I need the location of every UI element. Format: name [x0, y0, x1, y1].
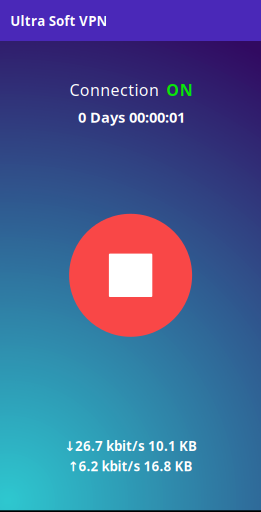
- staticText: Ultra Soft VPN: [10, 12, 107, 30]
- staticText: 0 Days 00:00:01: [78, 107, 185, 127]
- staticText: ↓26.7 kbit/s 10.1 KB: [64, 437, 197, 455]
- staticText: ↑6.2 kbit/s 16.8 KB: [67, 457, 192, 475]
- staticText: Connection: [69, 79, 159, 100]
- button[interactable]: Disconnect VPN: [69, 214, 192, 337]
- staticText: ON: [166, 79, 193, 100]
